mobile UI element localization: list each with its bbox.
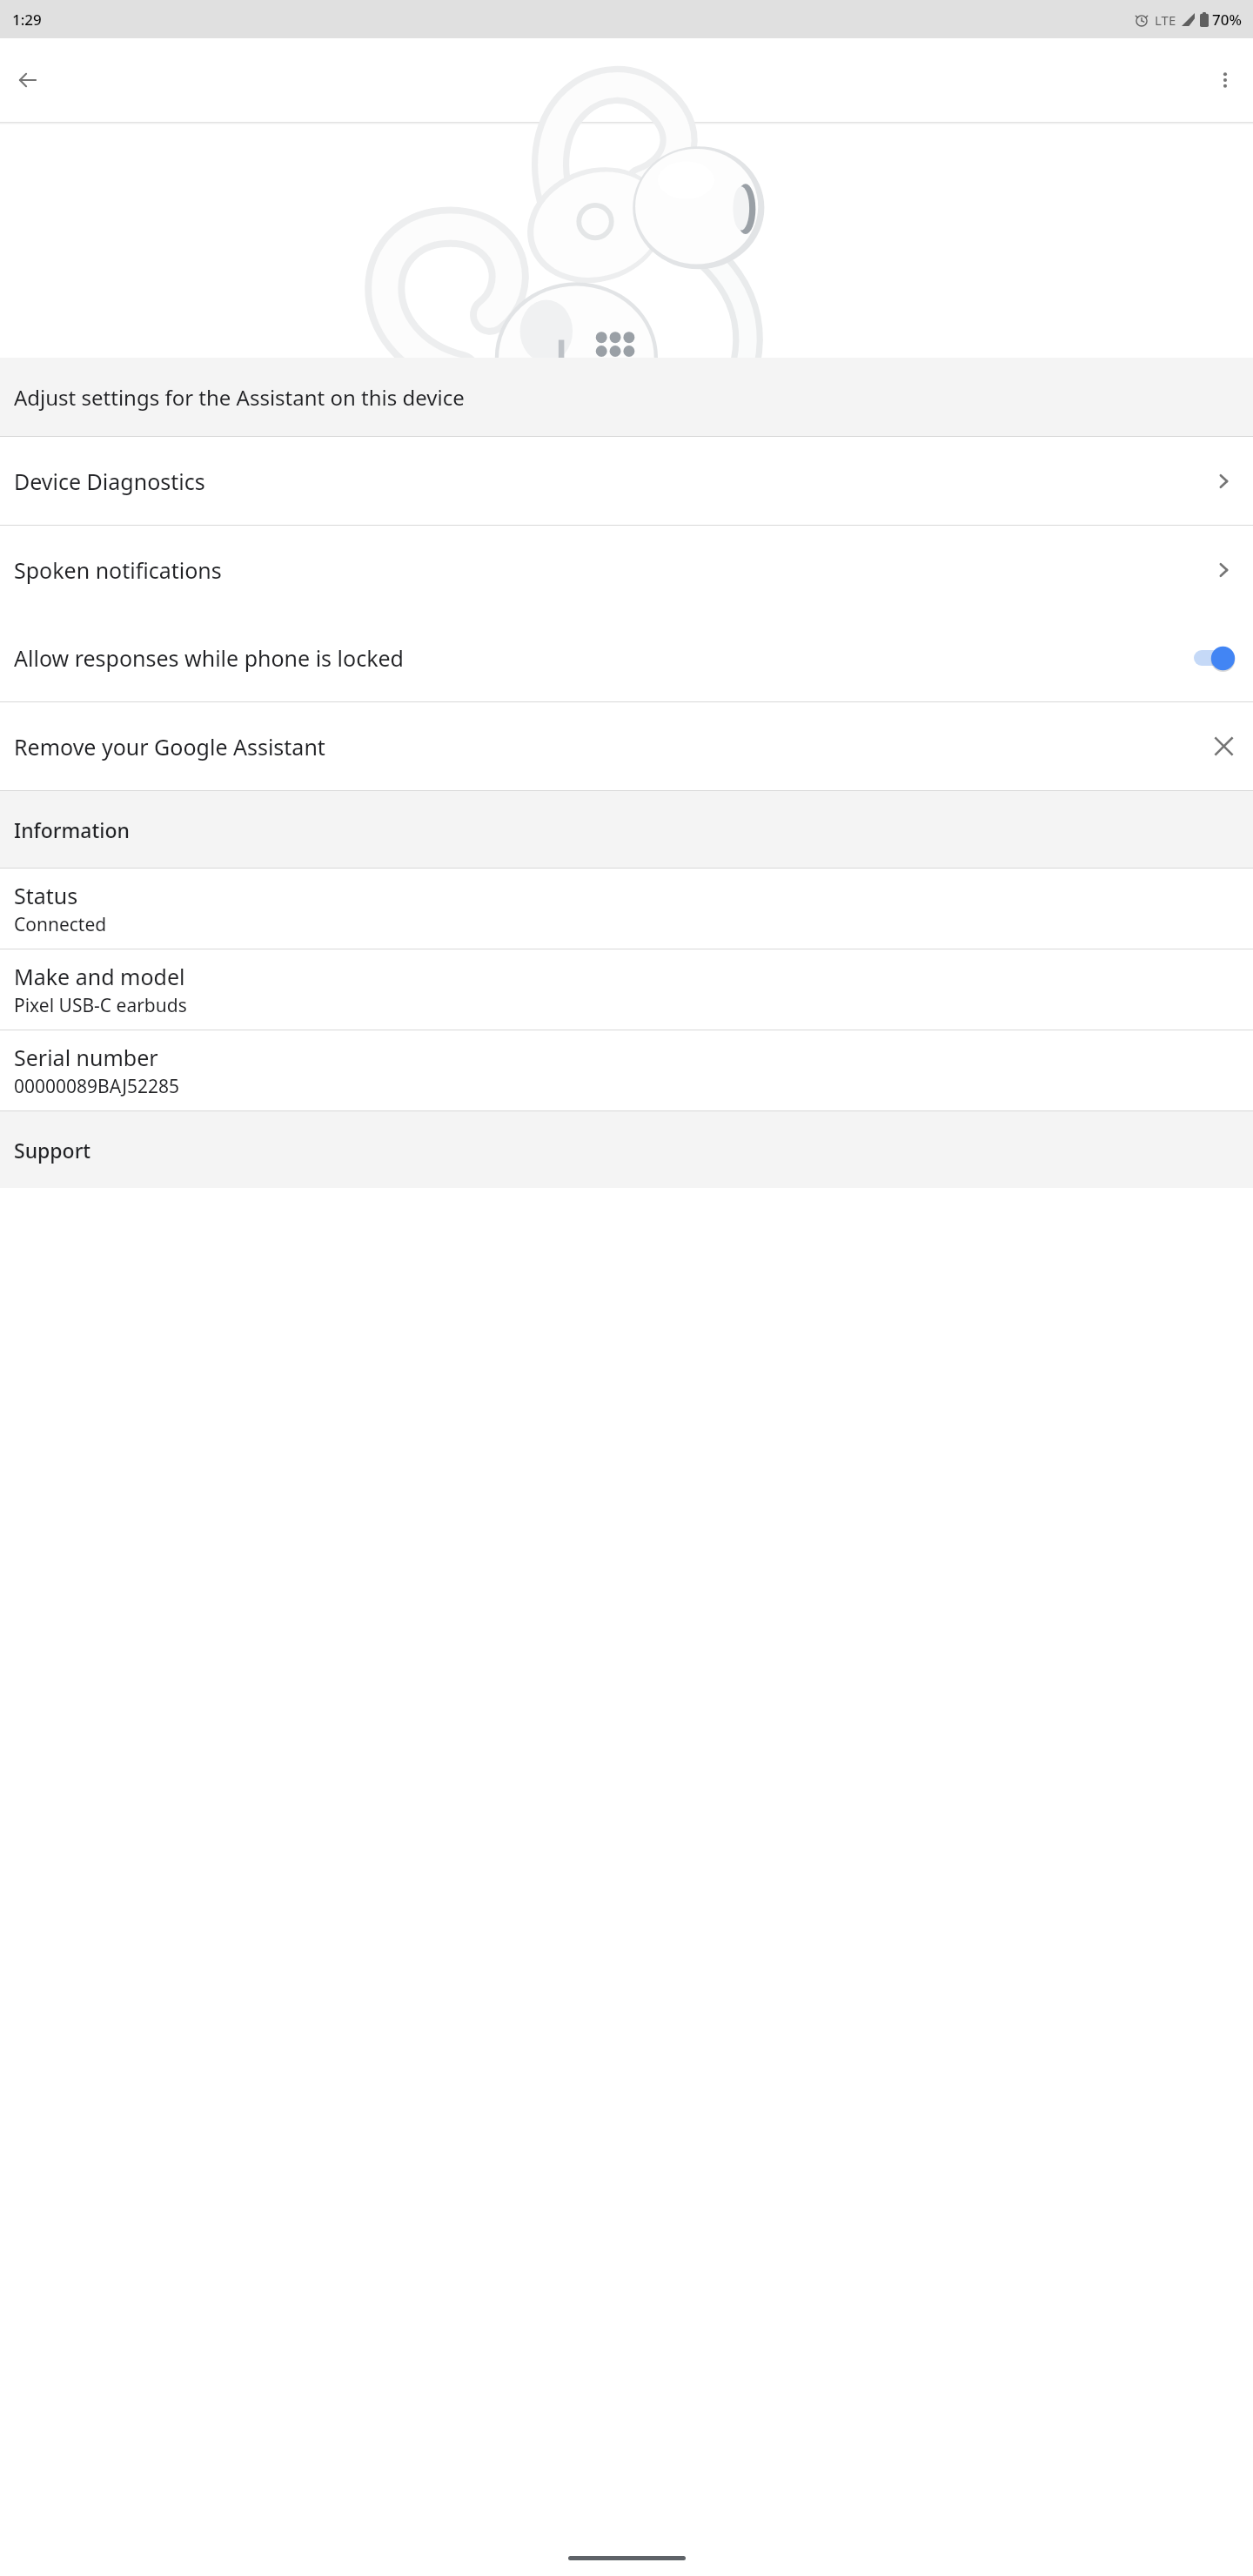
button[interactable]: Allow responses while phone is locked <box>0 614 1253 701</box>
staticText: Adjust settings for the Assistant on thi… <box>14 383 465 412</box>
button[interactable]: Back <box>7 59 49 101</box>
staticText: Connected <box>14 912 107 937</box>
staticText: Make and model <box>14 962 185 991</box>
staticText: Spoken notifications <box>14 555 1213 585</box>
button[interactable]: Status <box>0 869 1253 949</box>
staticText: Remove your Google Assistant <box>14 732 1212 761</box>
staticText: Status <box>14 881 78 910</box>
staticText: Support <box>14 1137 91 1164</box>
button[interactable]: More options <box>1204 59 1246 101</box>
staticText: 00000089BAJ52285 <box>14 1074 180 1099</box>
staticText: Information <box>14 816 130 843</box>
button[interactable]: Device Diagnostics <box>0 437 1253 525</box>
staticText: 1:29 <box>12 10 42 30</box>
staticText: LTE <box>1155 11 1176 29</box>
staticText: Pixel USB-C earbuds <box>14 993 187 1018</box>
staticText: Device Diagnostics <box>14 466 1213 496</box>
staticText: 70% <box>1212 10 1242 30</box>
button[interactable]: Serial number <box>0 1030 1253 1110</box>
staticText: Serial number <box>14 1043 158 1072</box>
staticText: Allow responses while phone is locked <box>14 643 1192 673</box>
button[interactable]: Make and model <box>0 949 1253 1030</box>
button[interactable]: Adjust settings for the Assistant on thi… <box>0 358 1253 436</box>
button[interactable]: Spoken notifications <box>0 526 1253 614</box>
button[interactable]: Remove your Google Assistant <box>0 702 1253 790</box>
